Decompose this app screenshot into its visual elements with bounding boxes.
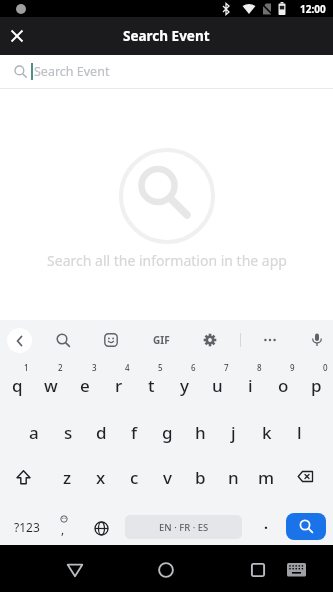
staticText: 5: [158, 362, 163, 373]
button[interactable]: e: [68, 360, 102, 407]
staticText: r: [115, 374, 123, 397]
button[interactable]: EN · FR · ES: [125, 515, 242, 539]
staticText: 0: [323, 362, 328, 373]
button[interactable]: r: [102, 360, 135, 407]
staticText: p: [311, 374, 322, 397]
button[interactable]: u: [201, 360, 234, 407]
button[interactable]: [283, 454, 333, 501]
button[interactable]: n: [217, 454, 250, 501]
button[interactable]: [7, 328, 32, 353]
staticText: 1: [24, 362, 29, 373]
button[interactable]: j: [217, 407, 250, 454]
button[interactable]: a: [17, 407, 51, 454]
button[interactable]: [0, 454, 50, 501]
staticText: t: [148, 374, 155, 397]
staticText: ?123: [14, 519, 40, 535]
button[interactable]: [55, 550, 95, 590]
button[interactable]: z: [50, 454, 84, 501]
staticText: i: [248, 374, 253, 397]
staticText: o: [278, 374, 289, 397]
button[interactable]: o: [267, 360, 300, 407]
button[interactable]: f: [118, 407, 151, 454]
button[interactable]: GIF: [145, 328, 177, 352]
button[interactable]: c: [118, 454, 151, 501]
staticText: a: [29, 421, 39, 444]
staticText: b: [195, 466, 206, 489]
button[interactable]: [286, 513, 326, 540]
button[interactable]: [238, 550, 278, 590]
button[interactable]: [51, 328, 75, 352]
button[interactable]: w: [34, 360, 68, 407]
button[interactable]: b: [184, 454, 217, 501]
staticText: Search all the information in the app: [47, 251, 287, 270]
staticText: f: [131, 421, 138, 444]
button[interactable]: k: [250, 407, 283, 454]
button[interactable]: s: [51, 407, 85, 454]
staticText: g: [162, 421, 173, 444]
button[interactable]: [146, 550, 186, 590]
staticText: 4: [125, 362, 130, 373]
button[interactable]: [3, 22, 31, 50]
button[interactable]: ,: [50, 501, 78, 545]
button[interactable]: y: [168, 360, 201, 407]
staticText: m: [258, 466, 275, 489]
staticText: n: [228, 466, 239, 489]
button[interactable]: g: [151, 407, 184, 454]
staticText: x: [96, 466, 106, 489]
button[interactable]: x: [84, 454, 118, 501]
button[interactable]: v: [151, 454, 184, 501]
button[interactable]: [305, 328, 329, 352]
button[interactable]: d: [85, 407, 118, 454]
staticText: j: [231, 421, 236, 444]
staticText: w: [44, 374, 58, 397]
staticText: 2: [58, 362, 63, 373]
staticText: Search Event: [34, 63, 110, 80]
button[interactable]: [99, 328, 123, 352]
staticText: q: [12, 374, 23, 397]
staticText: z: [63, 466, 72, 489]
staticText: 9: [290, 362, 295, 373]
staticText: 6: [191, 362, 196, 373]
button[interactable]: h: [184, 407, 217, 454]
staticText: l: [297, 421, 302, 444]
button[interactable]: [198, 328, 222, 352]
button[interactable]: t: [135, 360, 168, 407]
button[interactable]: i: [234, 360, 267, 407]
button[interactable]: q: [0, 360, 34, 407]
button[interactable]: ?123: [0, 509, 54, 545]
staticText: e: [80, 374, 90, 397]
staticText: 7: [224, 362, 229, 373]
staticText: d: [96, 421, 107, 444]
staticText: 12:00: [300, 2, 326, 16]
staticText: .: [264, 514, 268, 533]
button[interactable]: m: [250, 454, 283, 501]
button[interactable]: .: [254, 509, 278, 545]
staticText: Search Event: [123, 27, 210, 45]
button[interactable]: [282, 556, 310, 584]
staticText: u: [212, 374, 223, 397]
staticText: EN · FR · ES: [159, 521, 209, 534]
button[interactable]: l: [283, 407, 316, 454]
staticText: 8: [257, 362, 262, 373]
staticText: h: [195, 421, 206, 444]
staticText: ,: [61, 521, 65, 537]
button[interactable]: Search Event: [0, 55, 333, 88]
button[interactable]: [87, 514, 115, 542]
button[interactable]: [258, 328, 282, 352]
staticText: y: [180, 374, 189, 397]
staticText: GIF: [153, 333, 170, 347]
staticText: v: [163, 466, 172, 489]
staticText: k: [262, 421, 272, 444]
button[interactable]: p: [300, 360, 333, 407]
staticText: c: [130, 466, 139, 489]
staticText: 3: [92, 362, 97, 373]
staticText: s: [64, 421, 73, 444]
